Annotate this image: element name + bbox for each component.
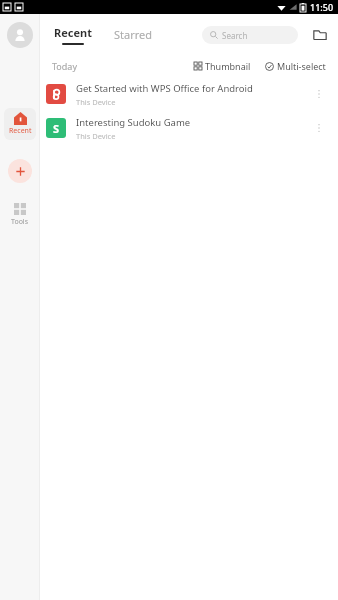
button[interactable]: S bbox=[40, 111, 338, 145]
staticText: This Device bbox=[76, 131, 116, 141]
staticText: Recent bbox=[9, 126, 32, 136]
button[interactable]: Thumbnail bbox=[192, 58, 253, 74]
button[interactable]: Search bbox=[202, 26, 298, 44]
staticText: Starred bbox=[114, 27, 153, 42]
button[interactable]: More options bbox=[310, 119, 328, 137]
button[interactable]: Recent bbox=[4, 108, 36, 140]
button[interactable]: Multi-select bbox=[263, 58, 328, 74]
button[interactable]: Get Started with WPS Office for Android bbox=[40, 77, 338, 111]
staticText: Get Started with WPS Office for Android bbox=[76, 82, 253, 95]
staticText: Tools bbox=[11, 217, 29, 227]
button[interactable]: More options bbox=[310, 85, 328, 103]
staticText: Today bbox=[52, 60, 77, 72]
staticText: Search bbox=[222, 30, 248, 41]
staticText: Recent bbox=[54, 25, 92, 40]
button[interactable]: Recent bbox=[52, 25, 94, 45]
button[interactable]: New bbox=[8, 159, 32, 183]
staticText: Interesting Sudoku Game bbox=[76, 116, 191, 129]
staticText: Multi-select bbox=[277, 60, 326, 72]
button[interactable]: Tools bbox=[7, 201, 33, 229]
button[interactable]: Account bbox=[7, 22, 33, 48]
staticText: 11:50 bbox=[310, 1, 334, 13]
button[interactable]: Open folder bbox=[310, 25, 330, 45]
staticText: Thumbnail bbox=[205, 60, 251, 72]
button[interactable]: Starred bbox=[112, 23, 155, 46]
staticText: This Device bbox=[76, 97, 116, 107]
staticText: S bbox=[53, 121, 60, 136]
